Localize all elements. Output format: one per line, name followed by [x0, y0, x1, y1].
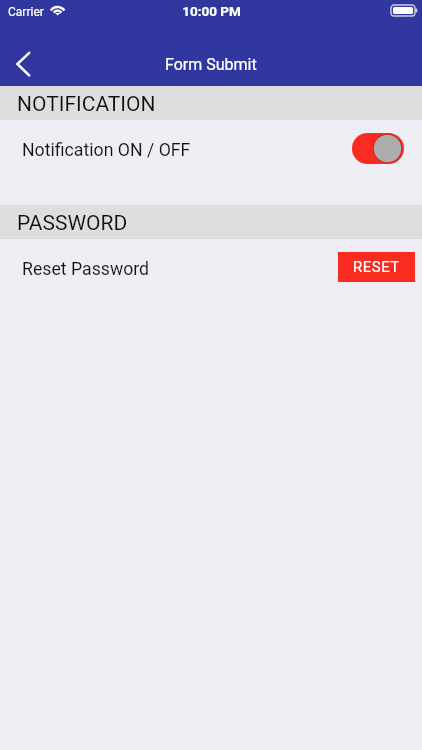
- button[interactable]: Reset Password: [0, 239, 422, 309]
- staticText: Reset Password: [22, 259, 150, 280]
- button[interactable]: Notification ON / OFF: [0, 120, 422, 205]
- staticText: Form Submit: [165, 55, 257, 74]
- staticText: PASSWORD: [17, 211, 128, 236]
- staticText: NOTIFICATION: [17, 92, 156, 117]
- staticText: 10:00 PM: [182, 3, 241, 19]
- staticText: Carrier: [8, 5, 44, 19]
- staticText: RESET: [353, 258, 400, 276]
- button[interactable]: Back: [1, 42, 45, 86]
- button[interactable]: RESET: [338, 252, 415, 282]
- staticText: Notification ON / OFF: [22, 140, 191, 161]
- button[interactable]: Notification toggle: [352, 133, 404, 164]
